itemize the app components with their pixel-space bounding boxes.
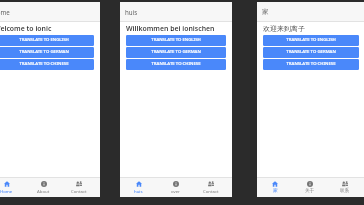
button[interactable]: TRANSLATE TO GERMAN: [263, 47, 359, 58]
button[interactable]: About: [25, 178, 61, 197]
button[interactable]: Home: [120, 178, 157, 197]
staticText: TRANSLATE TO GERMAN: [286, 48, 336, 54]
button[interactable]: TRANSLATE TO CHINESE: [126, 59, 226, 70]
staticText: over: [171, 188, 180, 194]
button[interactable]: TRANSLATE TO ENGLISH: [126, 35, 226, 46]
staticText: Welcome to ionic: [0, 24, 52, 33]
staticText: 家: [262, 8, 269, 16]
staticText: About: [37, 188, 50, 194]
button[interactable]: TRANSLATE TO CHINESE: [0, 59, 94, 70]
button[interactable]: home: [0, 2, 100, 21]
staticText: TRANSLATE TO GERMAN: [151, 48, 201, 54]
button[interactable]: About: [292, 178, 327, 197]
staticText: Home: [0, 188, 13, 194]
button[interactable]: 家: [257, 2, 364, 21]
staticText: 联系: [340, 188, 350, 194]
button[interactable]: TRANSLATE TO GERMAN: [0, 47, 94, 58]
staticText: 家: [273, 188, 278, 194]
button[interactable]: Home: [257, 178, 292, 197]
button[interactable]: TRANSLATE TO ENGLISH: [0, 35, 94, 46]
staticText: huis: [125, 8, 138, 16]
staticText: TRANSLATE TO CHINESE: [19, 60, 69, 66]
button[interactable]: Contact: [327, 178, 362, 197]
button[interactable]: Home: [0, 178, 25, 197]
staticText: TRANSLATE TO ENGLISH: [286, 36, 336, 42]
staticText: huis: [134, 188, 143, 194]
staticText: TRANSLATE TO ENGLISH: [151, 36, 201, 42]
staticText: Willkommen bei ionischen: [126, 24, 215, 33]
button[interactable]: huis: [120, 2, 232, 21]
staticText: Contact: [203, 188, 219, 194]
button[interactable]: TRANSLATE TO ENGLISH: [263, 35, 359, 46]
staticText: home: [0, 8, 10, 16]
button[interactable]: Contact: [61, 178, 97, 197]
staticText: TRANSLATE TO CHINESE: [151, 60, 201, 66]
button[interactable]: TRANSLATE TO GERMAN: [126, 47, 226, 58]
staticText: TRANSLATE TO ENGLISH: [19, 36, 69, 42]
staticText: 关于: [305, 188, 315, 194]
staticText: Contact: [71, 188, 87, 194]
staticText: 欢迎来到离子: [263, 24, 305, 33]
button[interactable]: TRANSLATE TO CHINESE: [263, 59, 359, 70]
staticText: TRANSLATE TO GERMAN: [19, 48, 69, 54]
staticText: TRANSLATE TO CHINESE: [286, 60, 336, 66]
button[interactable]: Contact: [193, 178, 229, 197]
button[interactable]: About: [157, 178, 193, 197]
